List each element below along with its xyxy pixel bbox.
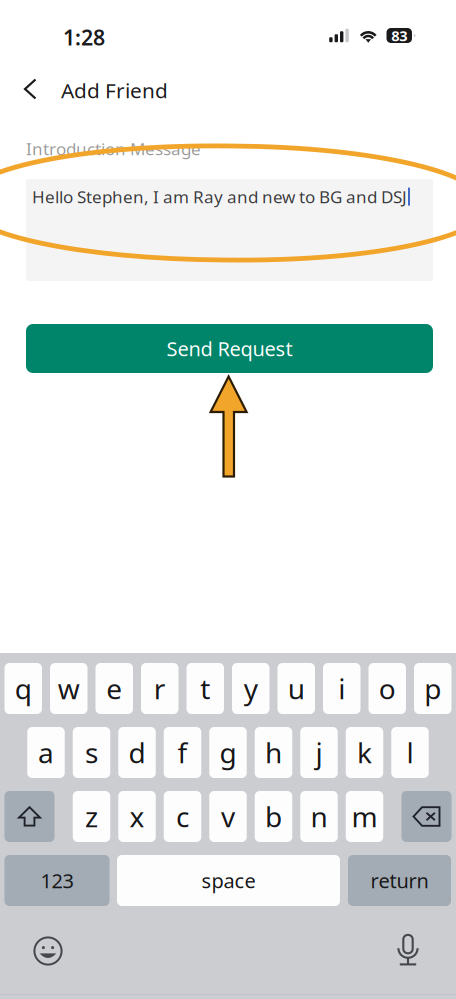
- staticText: b: [265, 798, 282, 835]
- button[interactable]: v: [209, 791, 247, 842]
- button[interactable]: 123: [4, 855, 109, 906]
- button[interactable]: o: [368, 663, 406, 714]
- button[interactable]: h: [255, 727, 292, 778]
- button[interactable]: Delete: [401, 791, 451, 842]
- button[interactable]: w: [50, 663, 87, 714]
- staticText: r: [154, 670, 166, 707]
- button[interactable]: p: [414, 663, 451, 714]
- staticText: f: [177, 734, 187, 771]
- staticText: s: [85, 734, 98, 771]
- button[interactable]: e: [95, 663, 133, 714]
- button[interactable]: f: [164, 727, 201, 778]
- staticText: u: [288, 670, 305, 707]
- staticText: p: [424, 670, 441, 707]
- staticText: j: [315, 734, 322, 771]
- staticText: c: [176, 798, 189, 835]
- staticText: i: [338, 670, 345, 707]
- button[interactable]: z: [73, 791, 110, 842]
- staticText: q: [15, 670, 32, 707]
- button[interactable]: r: [141, 663, 178, 714]
- staticText: t: [200, 670, 210, 707]
- staticText: n: [310, 798, 327, 835]
- staticText: k: [357, 734, 372, 771]
- button[interactable]: i: [323, 663, 360, 714]
- button[interactable]: q: [4, 663, 42, 714]
- staticText: w: [58, 670, 80, 707]
- staticText: a: [38, 734, 54, 771]
- button[interactable]: n: [300, 791, 338, 842]
- button[interactable]: l: [391, 727, 429, 778]
- staticText: d: [128, 734, 145, 771]
- staticText: v: [221, 798, 235, 835]
- staticText: return: [370, 867, 428, 894]
- button[interactable]: Dictation: [382, 927, 434, 973]
- button[interactable]: return: [348, 855, 451, 906]
- button[interactable]: Shift: [4, 791, 54, 842]
- button[interactable]: s: [73, 727, 110, 778]
- button[interactable]: Send Request: [26, 324, 433, 373]
- button[interactable]: m: [346, 791, 383, 842]
- staticText: x: [129, 798, 144, 835]
- staticText: z: [85, 798, 98, 835]
- staticText: Send Request: [166, 335, 292, 362]
- button[interactable]: u: [277, 663, 315, 714]
- button[interactable]: d: [118, 727, 156, 778]
- button[interactable]: space: [117, 855, 340, 906]
- button[interactable]: Emoji keyboard: [22, 928, 74, 974]
- staticText: m: [351, 798, 377, 835]
- staticText: 123: [40, 867, 73, 894]
- button[interactable]: c: [164, 791, 201, 842]
- staticText: y: [244, 670, 258, 707]
- button[interactable]: k: [346, 727, 383, 778]
- staticText: Hello Stephen, I am Ray and new to BG an…: [32, 185, 407, 208]
- button[interactable]: b: [255, 791, 292, 842]
- button[interactable]: a: [27, 727, 65, 778]
- button[interactable]: Back: [17, 69, 49, 109]
- staticText: h: [265, 734, 282, 771]
- staticText: space: [201, 867, 255, 894]
- staticText: e: [106, 670, 122, 707]
- button[interactable]: y: [232, 663, 269, 714]
- staticText: Add Friend: [61, 76, 168, 104]
- staticText: Introduction Message: [26, 137, 201, 160]
- button[interactable]: x: [118, 791, 156, 842]
- staticText: l: [406, 734, 413, 771]
- button[interactable]: g: [209, 727, 247, 778]
- staticText: o: [379, 670, 396, 707]
- staticText: 1:28: [63, 23, 105, 51]
- button[interactable]: t: [186, 663, 224, 714]
- staticText: 83: [391, 26, 407, 45]
- staticText: g: [219, 734, 236, 771]
- button[interactable]: j: [300, 727, 338, 778]
